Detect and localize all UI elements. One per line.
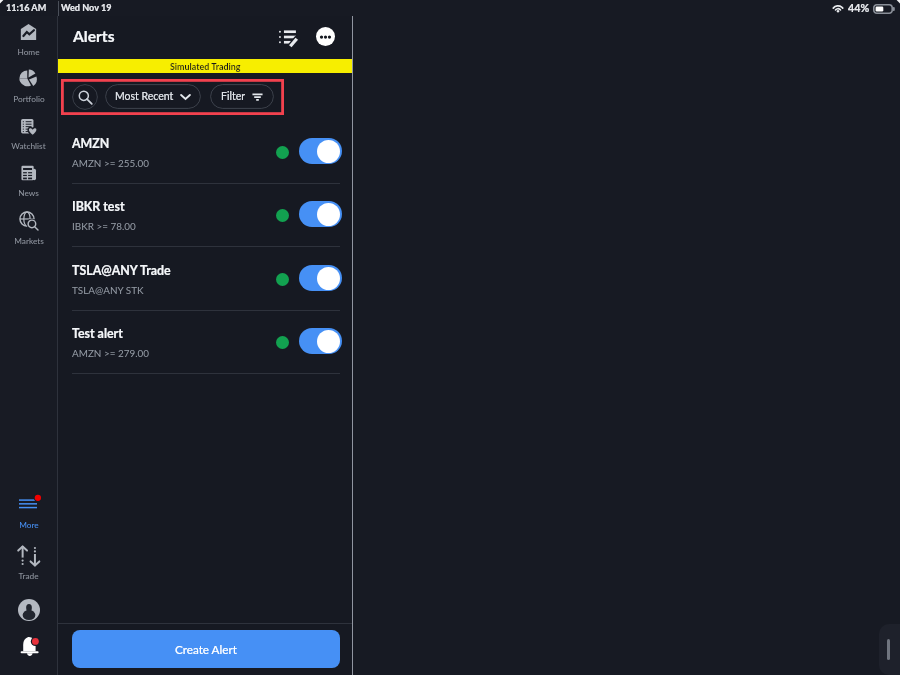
staticText: Markets: [14, 236, 44, 246]
button[interactable]: Search: [72, 84, 98, 110]
button[interactable]: IBKR test: [58, 184, 352, 247]
staticText: Home: [17, 47, 40, 57]
staticText: Test alert: [72, 326, 123, 341]
staticText: Portfolio: [13, 94, 45, 104]
staticText: Watchlist: [11, 141, 46, 151]
staticText: News: [18, 188, 39, 198]
staticText: Alerts: [73, 27, 115, 46]
button[interactable]: Edit alerts: [269, 19, 306, 56]
staticText: Trade: [18, 571, 39, 581]
staticText: IBKR test: [72, 199, 125, 214]
staticText: AMZN >= 255.00: [72, 157, 149, 169]
button[interactable]: Toggle alert IBKR test: [299, 201, 342, 227]
staticText: IBKR >= 78.00: [72, 220, 136, 232]
button[interactable]: Notifications: [20, 636, 40, 657]
button[interactable]: Toggle alert AMZN: [299, 138, 342, 164]
button[interactable]: More options: [307, 18, 344, 55]
staticText: Create Alert: [175, 642, 237, 656]
button[interactable]: Toggle alert TSLA@ANY Trade: [299, 265, 342, 291]
button[interactable]: Portfolio: [0, 63, 57, 111]
button[interactable]: More: [0, 493, 57, 536]
staticText: 44%: [848, 1, 870, 14]
button[interactable]: Markets: [0, 205, 57, 252]
button[interactable]: Filter: [210, 84, 274, 109]
button[interactable]: Toggle alert Test alert: [299, 328, 342, 354]
staticText: Simulated Trading: [170, 61, 241, 72]
button[interactable]: Resize handle: [879, 624, 900, 675]
button[interactable]: Most Recent: [105, 84, 201, 109]
button[interactable]: Watchlist: [0, 112, 57, 158]
button[interactable]: News: [0, 159, 57, 205]
staticText: More: [19, 520, 39, 530]
staticText: TSLA@ANY Trade: [72, 263, 171, 278]
staticText: Most Recent: [115, 90, 174, 103]
button[interactable]: TSLA@ANY Trade: [58, 248, 352, 311]
staticText: AMZN >= 279.00: [72, 347, 149, 359]
staticText: AMZN: [72, 136, 110, 151]
button[interactable]: Trade: [0, 540, 57, 587]
button[interactable]: Test alert: [58, 311, 352, 374]
staticText: Wed Nov 19: [61, 2, 112, 13]
button[interactable]: AMZN: [58, 121, 352, 184]
staticText: TSLA@ANY STK: [72, 284, 144, 296]
button[interactable]: Account: [18, 599, 40, 621]
button[interactable]: Create Alert: [72, 630, 340, 668]
staticText: 11:16 AM: [6, 2, 47, 13]
staticText: Filter: [221, 90, 246, 103]
button[interactable]: Home: [0, 17, 57, 64]
